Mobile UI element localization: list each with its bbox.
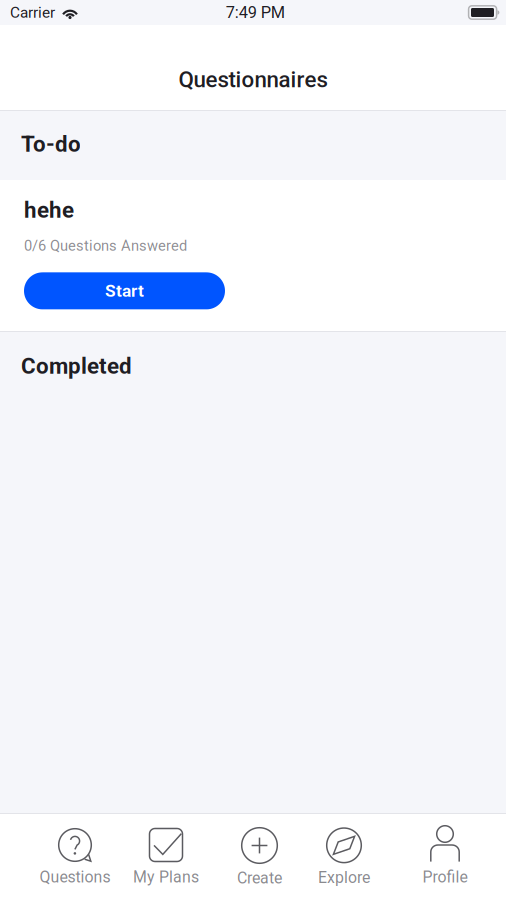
button[interactable]: Create — [220, 814, 298, 900]
staticText: 7:49 PM — [226, 3, 285, 22]
button[interactable]: My Plans — [127, 814, 205, 900]
staticText: hehe — [24, 197, 74, 223]
staticText: Questions — [39, 868, 110, 886]
button[interactable]: Explore — [305, 814, 383, 900]
staticText: Profile — [422, 868, 467, 886]
staticText: Explore — [318, 868, 370, 887]
button[interactable]: Questions — [36, 814, 114, 900]
staticText: 0/6 Questions Answered — [24, 237, 187, 254]
staticText: My Plans — [133, 868, 199, 886]
staticText: Questionnaires — [178, 66, 327, 93]
staticText: Completed — [21, 353, 132, 379]
staticText: Create — [237, 869, 282, 887]
staticText: To-do — [21, 131, 81, 157]
button[interactable]: Start — [24, 272, 225, 309]
button[interactable]: Profile — [406, 814, 484, 900]
staticText: Carrier — [10, 3, 55, 21]
staticText: Start — [105, 281, 144, 301]
